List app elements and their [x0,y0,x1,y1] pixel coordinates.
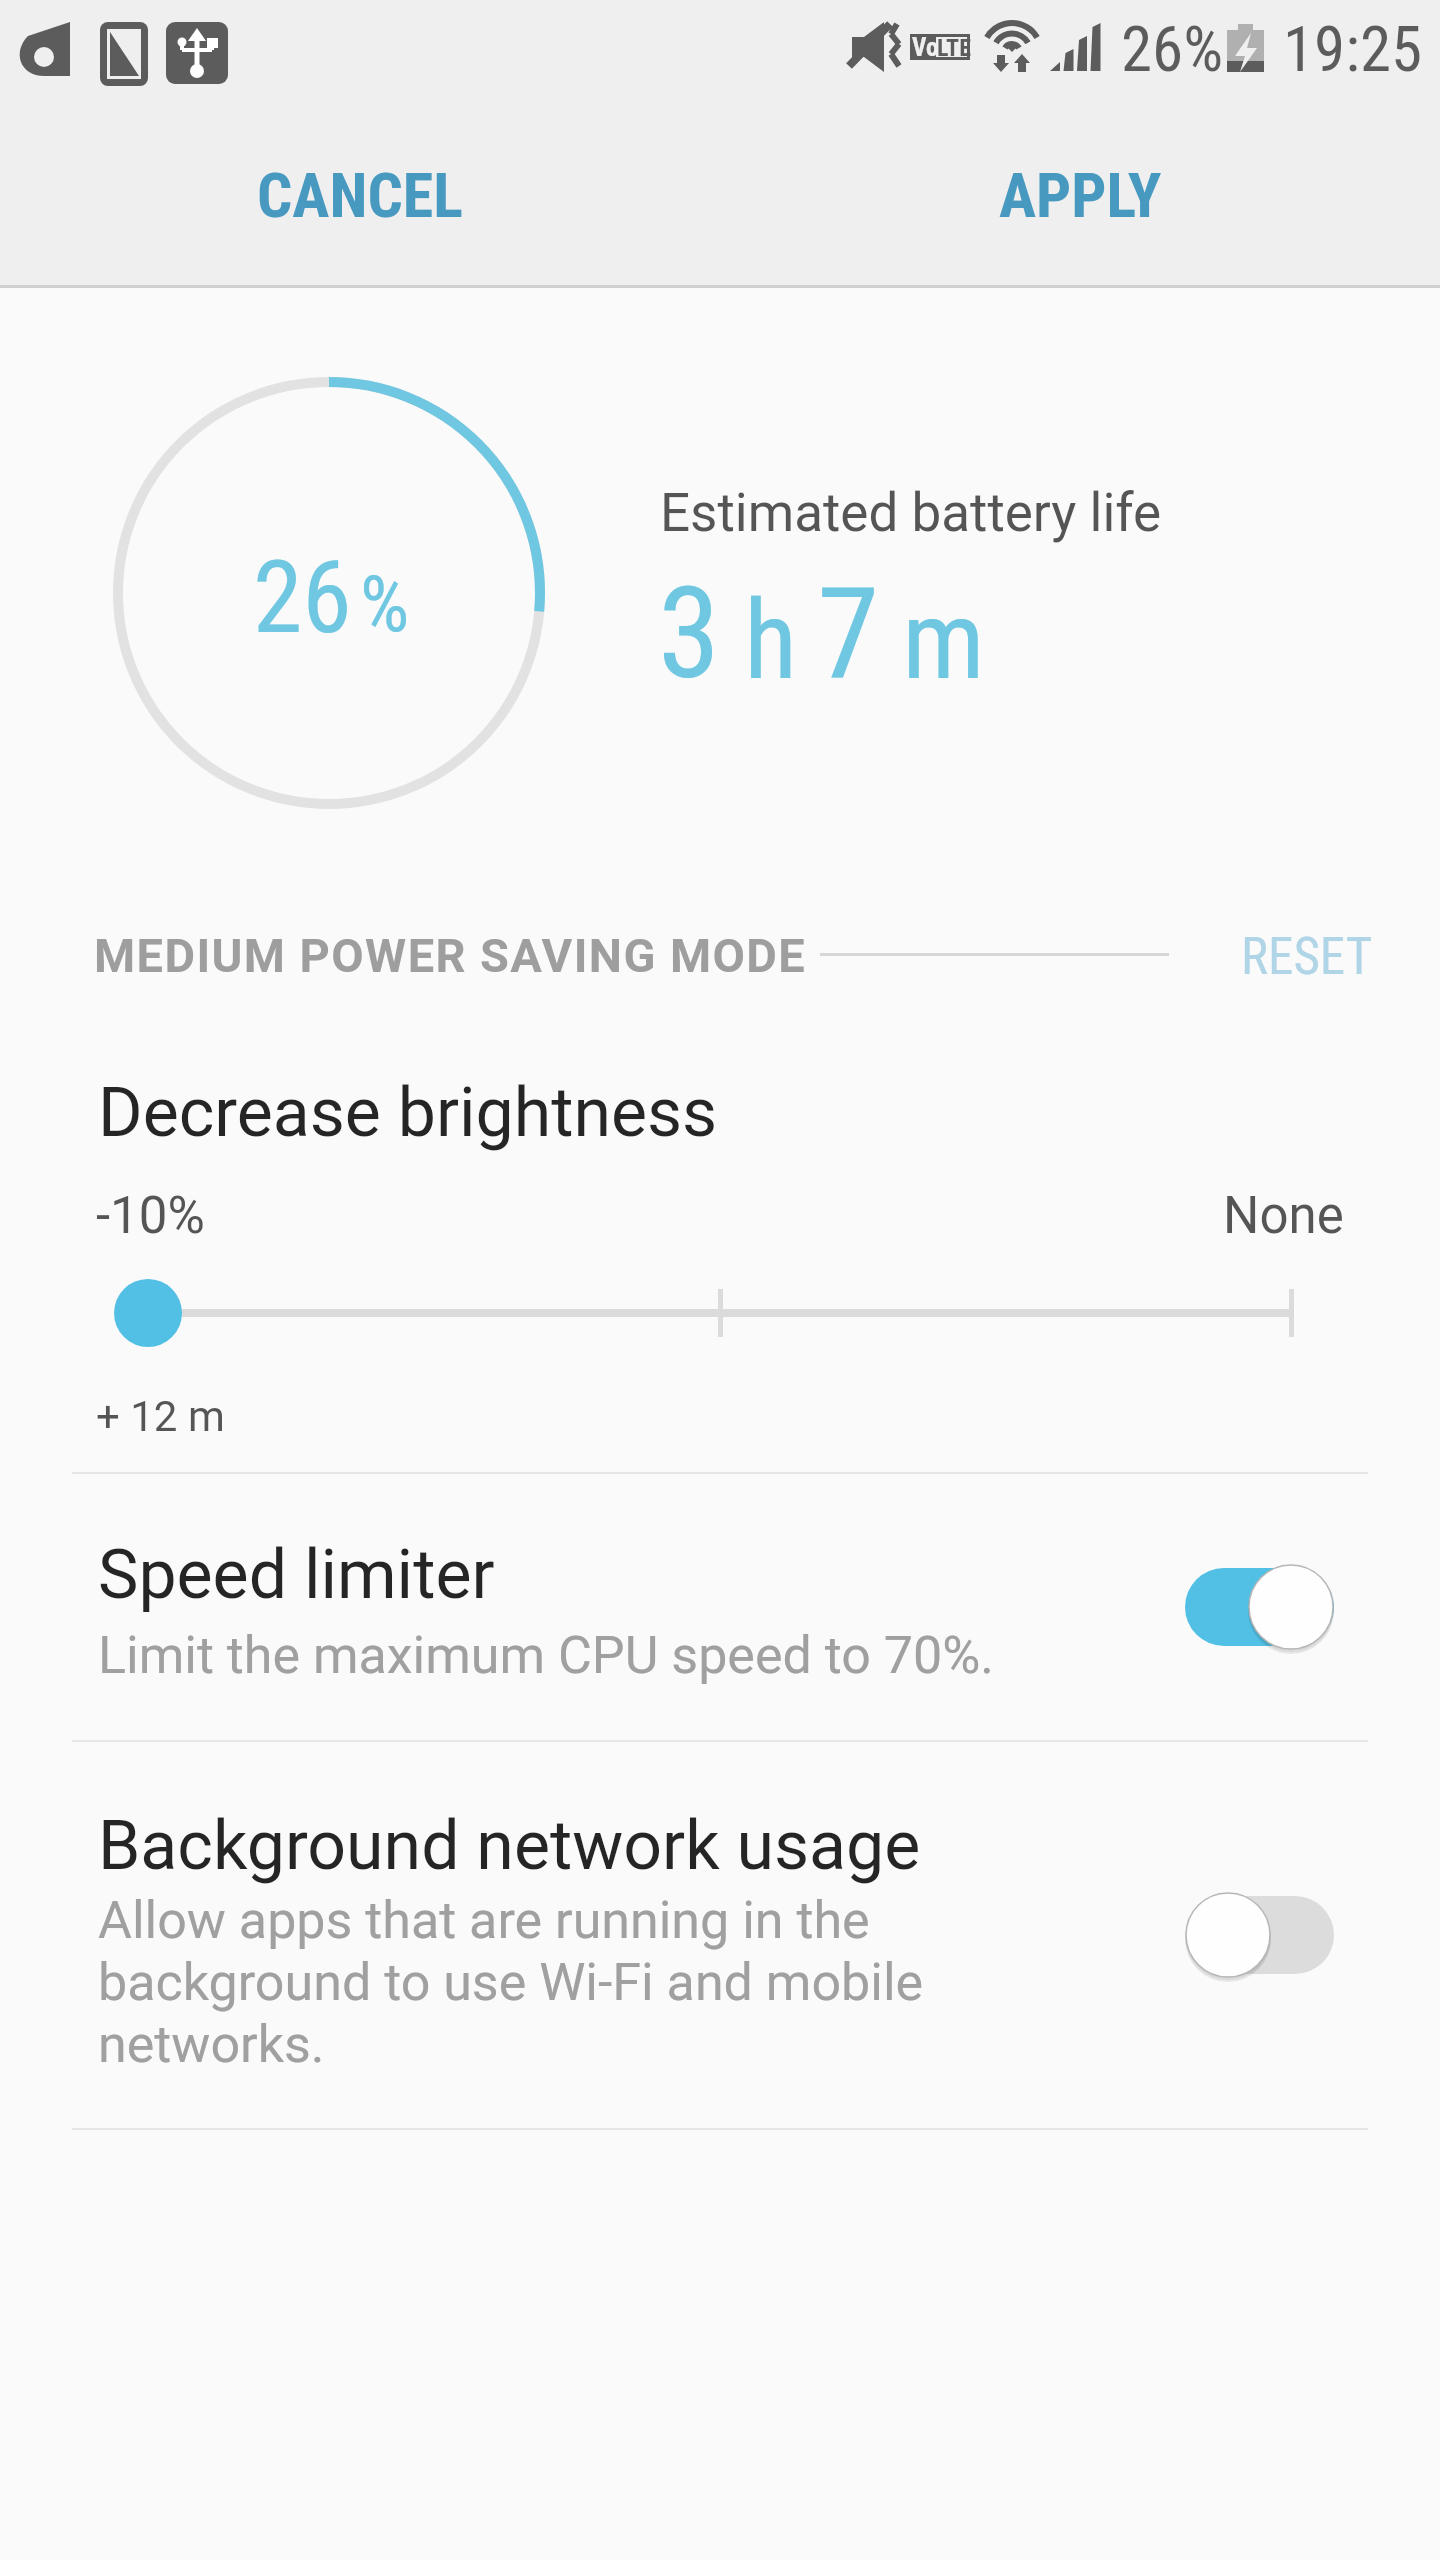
staticText: -10% [96,1186,205,1246]
staticText: Background network usage [98,1806,921,1886]
staticText: Limit the maximum CPU speed to 70%. [98,1625,995,1686]
button[interactable]: Background network usage off [1185,1896,1334,1974]
staticText: 26 [253,539,352,656]
button[interactable]: CANCEL [0,108,720,284]
staticText: % [360,559,410,650]
staticText: Vo [912,33,939,62]
staticText: + 12 m [96,1392,225,1441]
staticText: Decrease brightness [98,1073,718,1153]
staticText: h [744,576,798,705]
staticText: RESET [1241,927,1373,987]
staticText: None [1223,1186,1344,1246]
staticText: m [902,576,985,705]
button[interactable]: Speed limiter row [72,1474,1368,1740]
staticText: 26% [1121,13,1224,87]
staticText: Allow apps that are running in the backg… [98,1890,924,2075]
button[interactable]: Brightness decrease slider [0,1279,1440,1349]
staticText: LTE [937,34,971,62]
staticText: Estimated battery life [660,482,1162,544]
staticText: 19:25 [1283,13,1423,87]
staticText: CANCEL [257,159,463,232]
staticText: 3 [658,560,721,708]
staticText: APPLY [999,159,1162,232]
button[interactable]: RESET [1221,913,1393,1001]
button[interactable]: Decrease brightness [72,1040,1368,1472]
staticText: 7 [817,560,880,708]
staticText: MEDIUM POWER SAVING MODE [94,928,807,983]
button[interactable]: Speed limiter on [1185,1568,1334,1646]
button[interactable]: Background network usage row [72,1742,1368,2128]
staticText: Speed limiter [98,1535,495,1615]
button[interactable]: APPLY [720,108,1440,284]
